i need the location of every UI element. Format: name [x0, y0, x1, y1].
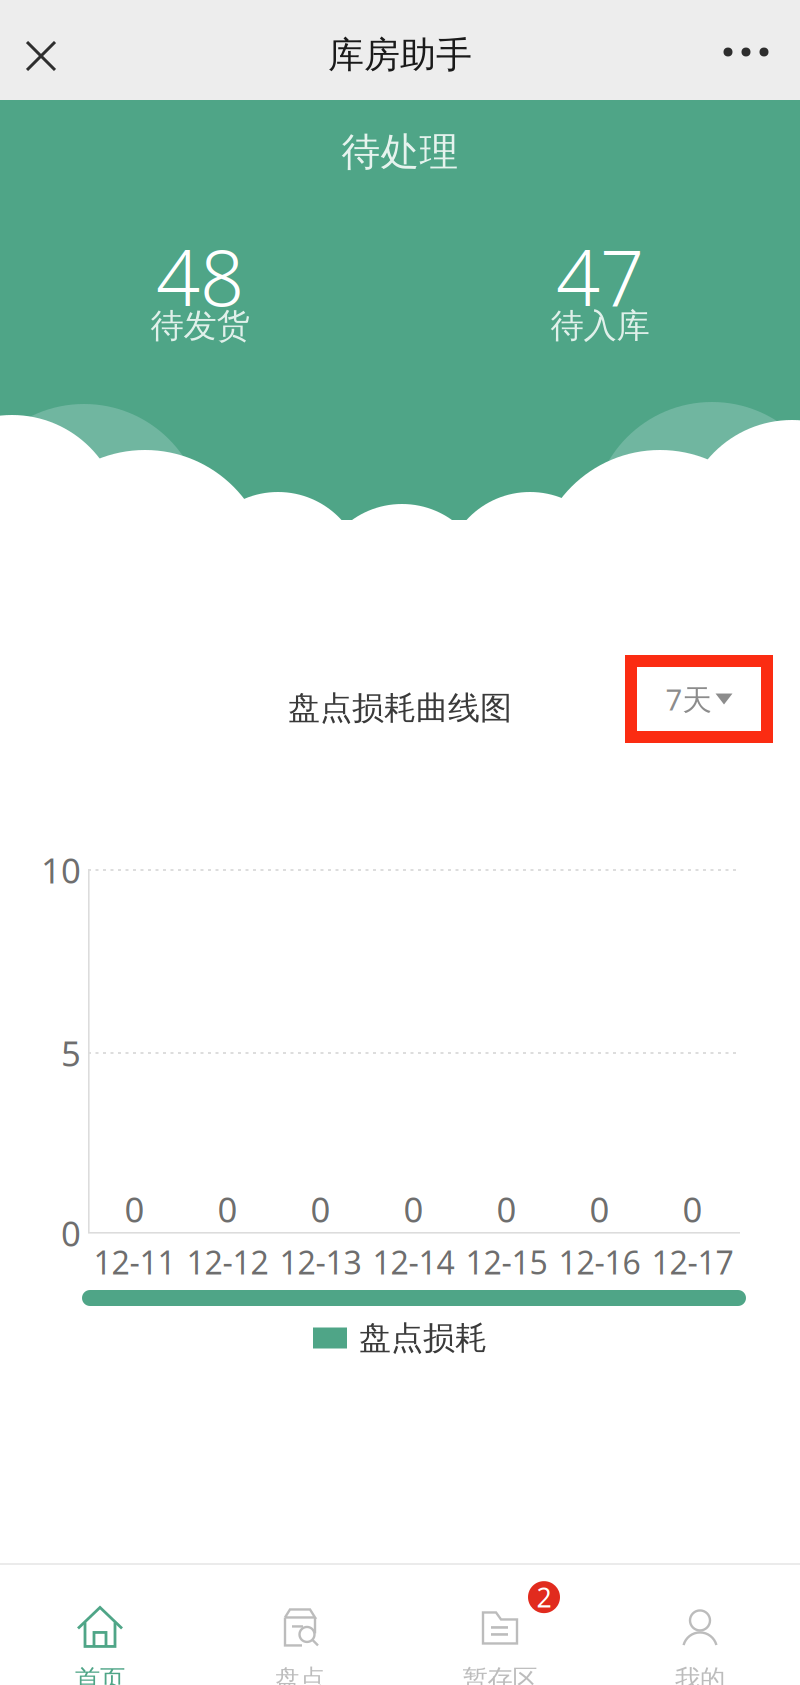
button[interactable]: More	[691, 2, 800, 102]
staticText: 盘点损耗曲线图	[288, 688, 512, 728]
staticText: 待入库	[550, 305, 649, 346]
staticText: 库房助手	[328, 33, 472, 77]
staticText: 0	[496, 1186, 516, 1232]
staticText: 7天	[665, 679, 711, 718]
staticText: 首页	[75, 1663, 125, 1685]
staticText: 0	[403, 1186, 423, 1232]
staticText: 待处理	[341, 128, 458, 176]
staticText: 12-14	[372, 1241, 454, 1283]
staticText: 12-15	[465, 1241, 547, 1283]
staticText: 12-13	[279, 1241, 361, 1283]
staticText: 48	[156, 225, 244, 327]
staticText: 47	[556, 225, 644, 327]
button[interactable]: Select 7 days	[625, 655, 773, 743]
staticText: 2	[536, 1579, 551, 1615]
staticText: 0	[310, 1186, 330, 1232]
button[interactable]: Close	[0, 0, 82, 100]
staticText: 盘点	[275, 1663, 325, 1685]
staticText: 盘点损耗	[359, 1318, 487, 1358]
staticText: 0	[589, 1186, 609, 1232]
staticText: 0	[217, 1186, 237, 1232]
staticText: 待发货	[150, 305, 249, 346]
button[interactable]: 首页	[0, 1603, 200, 1685]
staticText: 我的	[675, 1663, 725, 1685]
staticText: 5	[61, 1030, 81, 1076]
staticText: 12-16	[558, 1241, 640, 1283]
staticText: 10	[41, 847, 81, 893]
staticText: 暂存区	[462, 1663, 537, 1685]
staticText: 0	[682, 1186, 702, 1232]
button[interactable]: 我的	[600, 1603, 800, 1685]
staticText: 12-12	[186, 1241, 268, 1283]
staticText: 0	[61, 1210, 81, 1256]
button[interactable]: 盘点	[200, 1603, 400, 1685]
button[interactable]: 暂存区	[400, 1603, 600, 1685]
staticText: 12-17	[651, 1241, 733, 1283]
staticText: 0	[124, 1186, 144, 1232]
staticText: 12-11	[93, 1241, 175, 1283]
